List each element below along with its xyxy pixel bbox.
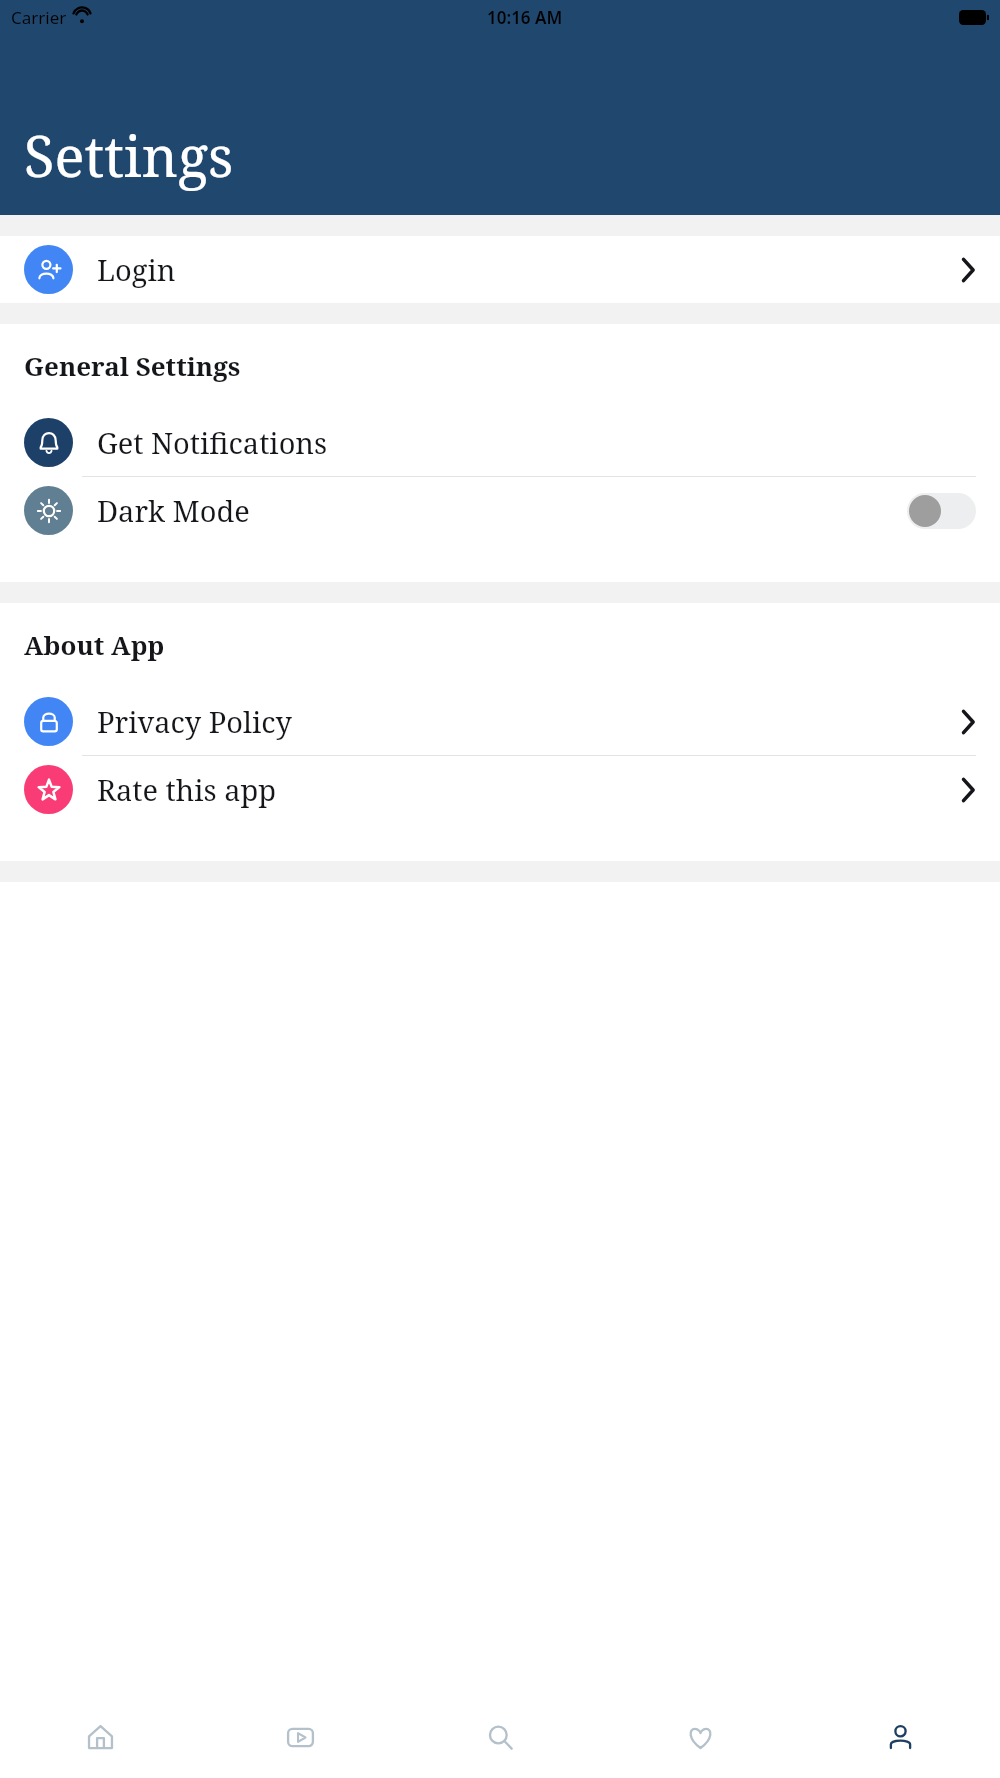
staticText: General Settings xyxy=(24,348,241,383)
staticText: Privacy Policy xyxy=(97,702,960,741)
button[interactable]: Favorites xyxy=(600,1696,800,1778)
button[interactable]: Search xyxy=(400,1696,600,1778)
staticText: Get Notifications xyxy=(97,423,976,462)
button[interactable]: Videos xyxy=(200,1696,400,1778)
button[interactable]: Login xyxy=(0,236,1000,303)
staticText: About App xyxy=(24,627,165,662)
staticText: Rate this app xyxy=(97,770,960,809)
button[interactable]: Home xyxy=(0,1696,200,1778)
staticText: Carrier xyxy=(11,6,67,29)
staticText: Login xyxy=(97,250,960,289)
staticText: Settings xyxy=(24,117,234,193)
button[interactable]: Get Notifications xyxy=(0,409,1000,476)
staticText: Dark Mode xyxy=(97,491,907,530)
staticText: 10:16 AM xyxy=(487,6,563,29)
button[interactable]: Privacy Policy xyxy=(0,688,1000,755)
button[interactable]: Dark Mode toggle xyxy=(907,493,976,529)
button[interactable]: Rate this app xyxy=(0,756,1000,823)
button[interactable]: Profile xyxy=(800,1696,1000,1778)
button[interactable]: Dark Mode xyxy=(0,477,1000,544)
